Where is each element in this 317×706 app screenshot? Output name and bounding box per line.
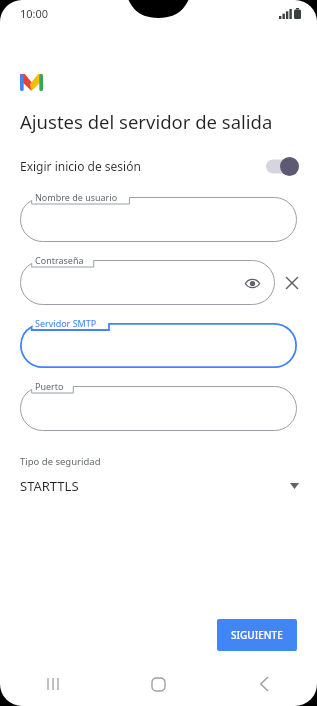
staticText: Contraseña [35, 254, 84, 266]
staticText: Puerto [35, 380, 64, 392]
staticText: SIGUIENTE [231, 628, 283, 642]
button[interactable]: Recientes [0, 662, 105, 706]
button[interactable]: Contraseña [20, 254, 275, 305]
staticText: Nombre de usuario [35, 191, 118, 203]
staticText: Exigir inicio de sesión [20, 158, 141, 174]
button[interactable]: Tipo de seguridad [0, 455, 317, 495]
button[interactable]: Atrás [211, 662, 317, 706]
button[interactable]: Borrar [281, 272, 303, 294]
button[interactable]: SIGUIENTE [217, 619, 297, 651]
staticText: STARTTLS [20, 477, 79, 495]
button[interactable]: Exigir inicio de sesión [0, 153, 317, 179]
staticText: 10:00 [20, 6, 49, 21]
staticText: Servidor SMTP [35, 317, 97, 329]
button[interactable]: Nombre de usuario [20, 191, 297, 242]
button[interactable]: Mostrar contraseña [241, 272, 263, 294]
button[interactable]: Servidor SMTP [20, 317, 297, 368]
staticText: Tipo de seguridad [20, 455, 101, 468]
button[interactable]: Puerto [20, 380, 297, 431]
button[interactable]: Inicio [105, 662, 211, 706]
staticText: Ajustes del servidor de salida [20, 109, 273, 134]
